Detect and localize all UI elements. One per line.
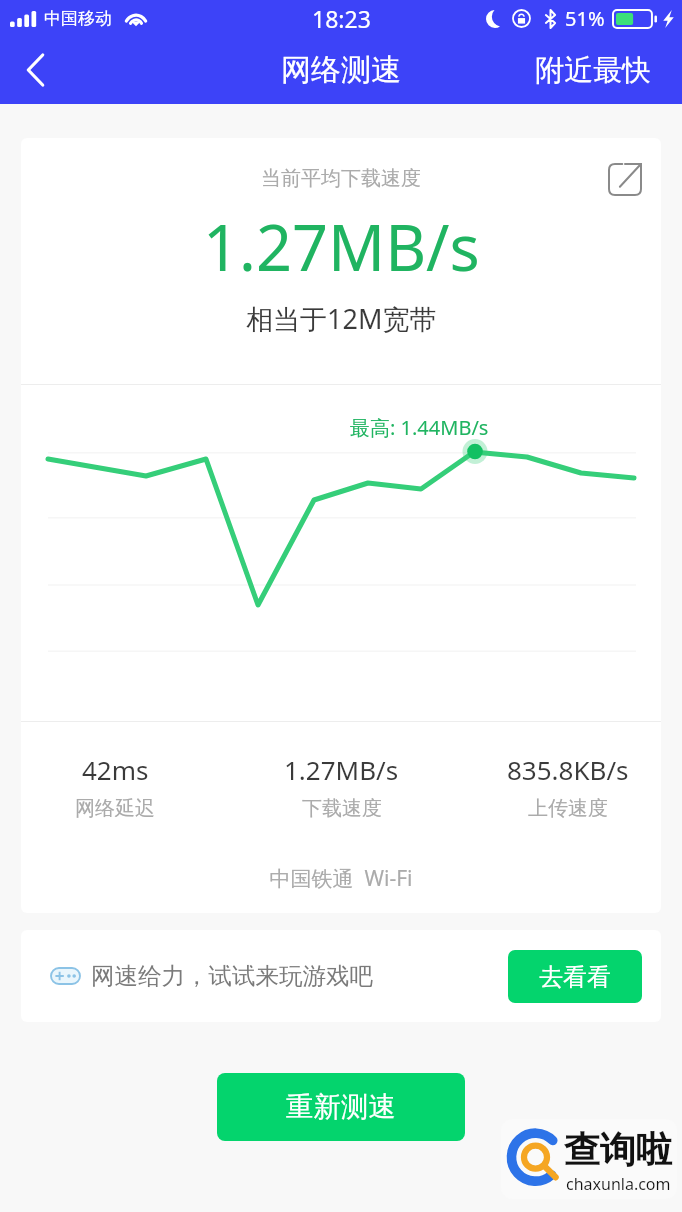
staticText: 835.8KB/s bbox=[507, 752, 629, 787]
staticText: 网络延迟 bbox=[75, 796, 155, 821]
staticText: 中国铁通 Wi-Fi bbox=[21, 864, 661, 893]
staticText: 1.27MB/s bbox=[284, 752, 399, 787]
staticText: 42ms bbox=[82, 752, 149, 787]
button[interactable]: Share bbox=[601, 155, 649, 203]
button[interactable]: 网速给力，试试来玩游戏吧 bbox=[21, 930, 661, 1022]
staticText: 18:23 bbox=[312, 3, 371, 34]
staticText: 重新测速 bbox=[286, 1090, 396, 1125]
staticText: 去看看 bbox=[539, 962, 611, 992]
button[interactable]: 去看看 bbox=[508, 950, 642, 1003]
staticText: 查询啦 bbox=[564, 1127, 672, 1172]
button[interactable]: 附近最快 bbox=[535, 52, 651, 89]
staticText: 中国移动 bbox=[44, 8, 112, 29]
staticText: 1.27MB/s bbox=[203, 204, 480, 290]
button[interactable]: Back bbox=[0, 36, 70, 104]
staticText: 网速给力，试试来玩游戏吧 bbox=[91, 961, 373, 991]
staticText: 上传速度 bbox=[528, 796, 608, 821]
staticText: 附近最快 bbox=[535, 52, 651, 89]
staticText: 51% bbox=[565, 5, 605, 32]
staticText: 网络测速 bbox=[281, 51, 401, 89]
button[interactable]: 重新测速 bbox=[217, 1073, 465, 1141]
staticText: 相当于12M宽带 bbox=[246, 300, 437, 337]
staticText: 下载速度 bbox=[302, 796, 382, 821]
staticText: chaxunla.com bbox=[566, 1173, 671, 1195]
staticText: 最高: 1.44MB/s bbox=[350, 414, 489, 441]
staticText: 当前平均下载速度 bbox=[261, 166, 421, 191]
